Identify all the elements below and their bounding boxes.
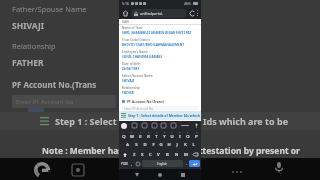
button[interactable]: S (132, 140, 141, 150)
button[interactable]: V (154, 150, 163, 159)
staticText: 46% (184, 1, 191, 6)
staticText: 0 (196, 131, 198, 134)
staticText: 1 (123, 131, 125, 134)
staticText: . (186, 161, 188, 166)
button[interactable]: 1 (120, 130, 128, 140)
button[interactable]: A (123, 140, 132, 150)
button[interactable]: Voice input (194, 123, 199, 128)
staticText: E (139, 134, 142, 140)
button[interactable]: clip (171, 123, 176, 128)
staticText: SHIVAJI (122, 79, 135, 83)
staticText: D (143, 142, 147, 148)
button[interactable]: GIF (132, 123, 137, 128)
button[interactable]: 0 (192, 130, 200, 140)
staticText: O (186, 134, 190, 140)
button[interactable]: X (138, 150, 146, 159)
button[interactable]: Lens (72, 164, 84, 176)
staticText: SHIVAJI (12, 20, 45, 32)
staticText: H (167, 142, 171, 148)
button[interactable]: Z (130, 150, 138, 159)
button[interactable]: Expand (181, 123, 189, 128)
staticText: M (184, 152, 188, 158)
button[interactable]: 5 (152, 130, 160, 140)
staticText: Relationship (12, 41, 56, 51)
staticText: Q (122, 134, 126, 140)
staticText: J (176, 142, 178, 148)
button[interactable]: Language (135, 160, 141, 167)
staticText: X (141, 152, 144, 158)
staticText: UAN (122, 20, 129, 24)
staticText: ?123 (121, 162, 128, 166)
button[interactable]: F (149, 140, 157, 150)
staticText: G (159, 142, 163, 148)
staticText: L (192, 142, 195, 148)
button[interactable]: Google search (34, 162, 50, 178)
button[interactable]: 4 (144, 130, 152, 140)
button[interactable]: theme (152, 123, 157, 128)
staticText: 7 (171, 131, 173, 134)
button[interactable]: Enter (189, 160, 200, 167)
staticText: Step 1 : Select details of Member Ids wh… (128, 113, 201, 118)
staticText: 9 (187, 131, 189, 134)
staticText: Employee's Name (122, 50, 148, 54)
button[interactable]: unifiedportal-mem.epfindia.gov.in (131, 9, 187, 18)
button[interactable]: Home (122, 10, 129, 17)
button[interactable]: sticker (142, 123, 147, 128)
staticText: 6 (164, 131, 166, 134)
staticText: Trust Code/ District (122, 38, 150, 42)
button[interactable]: J (173, 140, 181, 150)
staticText: PF Account No.(Trans) (127, 99, 164, 104)
staticText: 8 (179, 131, 181, 134)
staticText: W (130, 134, 134, 140)
button[interactable]: G (157, 140, 165, 150)
button[interactable]: More (197, 9, 198, 17)
button[interactable]: L (189, 140, 197, 150)
button[interactable]: Home (155, 170, 165, 180)
button[interactable]: Step 1 : Select details of Member Ids wh… (119, 111, 201, 120)
button[interactable]: 6 (160, 130, 168, 140)
button[interactable]: M (181, 150, 190, 159)
staticText: S (135, 142, 138, 148)
button[interactable]: Shift (120, 150, 130, 159)
button[interactable]: N (172, 150, 181, 159)
button[interactable]: ?123 (120, 160, 129, 167)
button[interactable]: More options (232, 167, 244, 177)
staticText: B (166, 152, 169, 158)
staticText: 5 (156, 131, 158, 134)
staticText: , (131, 161, 133, 166)
staticText: FATHER (12, 57, 44, 69)
button[interactable]: Recents (178, 170, 188, 180)
button[interactable]: H (165, 140, 173, 150)
button[interactable]: B (163, 150, 172, 159)
button[interactable]: 2 (128, 130, 136, 140)
button[interactable]: K (181, 140, 189, 150)
button[interactable]: English (142, 160, 183, 167)
staticText: I (179, 134, 181, 140)
button[interactable]: Emoji (129, 160, 135, 167)
staticText: PF Account No.(Trans (12, 79, 97, 90)
button[interactable]: D (141, 140, 149, 150)
button[interactable]: 8 (176, 130, 184, 140)
staticText: unifiedportal-mem.epfindia.gov.in (140, 11, 184, 16)
button[interactable]: 7 (168, 130, 176, 140)
staticText: SUNIL CHANDRA KAMBLE (122, 55, 163, 59)
button[interactable]: 3 (136, 130, 144, 140)
button[interactable]: Back (132, 170, 142, 180)
button[interactable]: 9 (184, 130, 192, 140)
staticText: FATHER (122, 91, 134, 95)
button[interactable]: Backspace (190, 150, 200, 159)
staticText: Name of Trust (122, 26, 143, 30)
button[interactable]: Enter PF Account No (122, 106, 198, 111)
staticText: 3 (140, 131, 142, 134)
button[interactable]: Voice search (272, 160, 286, 174)
button[interactable]: Period (184, 160, 189, 167)
staticText: English (157, 162, 168, 166)
staticText: R (147, 134, 150, 140)
button[interactable]: Gboard settings (121, 123, 127, 129)
button[interactable]: Refresh (189, 10, 196, 17)
staticText: U (170, 134, 174, 140)
staticText: Father/Spouse Name (12, 4, 87, 14)
button[interactable]: C (146, 150, 154, 159)
staticText: Note : Member has to get the claim attes… (42, 145, 300, 157)
button[interactable]: mic (161, 123, 166, 128)
